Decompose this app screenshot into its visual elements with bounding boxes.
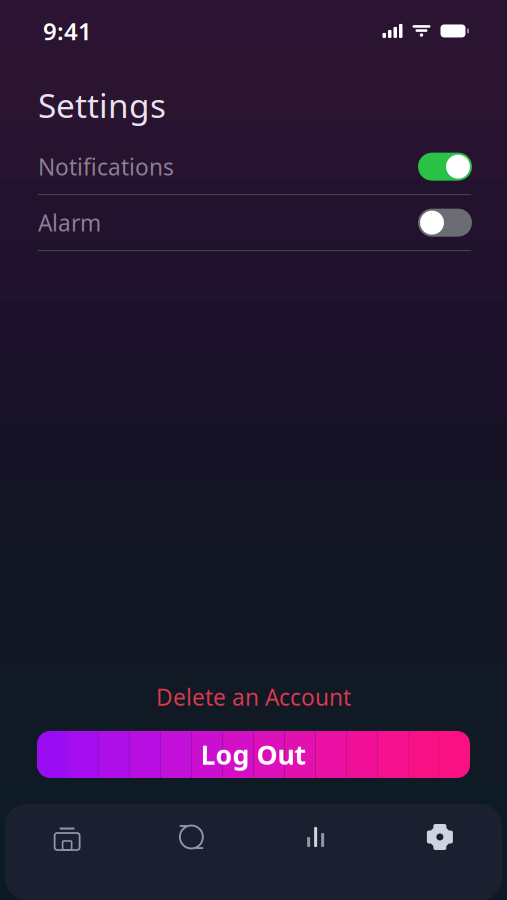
button[interactable]: Home [5, 820, 129, 854]
staticText: Alarm [38, 208, 101, 238]
staticText: Delete an Account [156, 682, 351, 712]
button[interactable]: Sync [129, 820, 253, 854]
staticText: Log Out [200, 737, 306, 772]
staticText: 9:41 [43, 15, 92, 47]
button[interactable]: Notifications [0, 139, 507, 194]
button[interactable]: Log Out [37, 731, 470, 778]
staticText: Notifications [38, 152, 174, 182]
button[interactable]: Alarm [0, 195, 507, 250]
button[interactable]: Settings [378, 820, 502, 854]
button[interactable]: Statistics [253, 820, 378, 854]
button[interactable]: Delete an Account [0, 682, 507, 712]
staticText: Settings [38, 83, 166, 127]
